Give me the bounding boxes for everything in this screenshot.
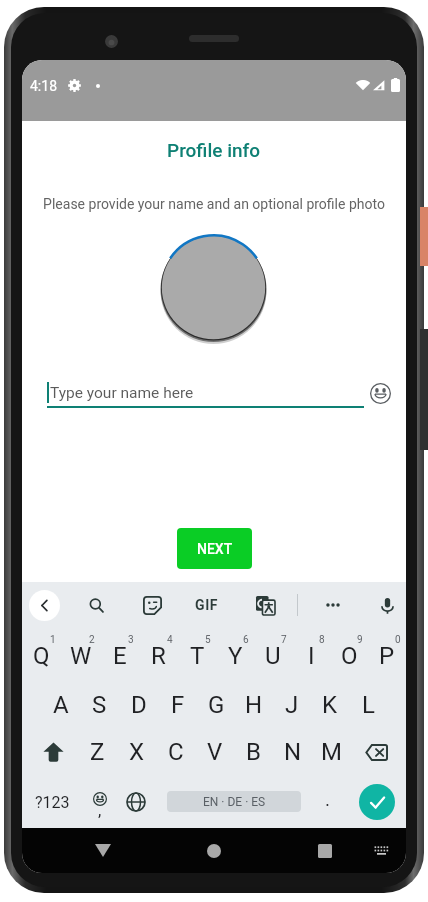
button[interactable]: F bbox=[158, 681, 197, 729]
staticText: , bbox=[98, 800, 102, 820]
staticText: 2 bbox=[89, 634, 95, 646]
button[interactable]: Emoji bbox=[367, 380, 393, 406]
button[interactable]: . bbox=[310, 780, 346, 824]
staticText: T bbox=[190, 642, 205, 670]
button[interactable]: S bbox=[80, 681, 119, 729]
button[interactable]: N bbox=[273, 729, 312, 775]
staticText: Y bbox=[228, 642, 243, 670]
staticText: A bbox=[53, 691, 69, 719]
button[interactable]: A bbox=[41, 681, 80, 729]
button[interactable]: Y bbox=[216, 627, 254, 681]
button[interactable]: K bbox=[311, 681, 349, 729]
button[interactable]: Shift bbox=[22, 729, 78, 775]
button[interactable]: Q bbox=[22, 627, 61, 681]
staticText: NEXT bbox=[197, 541, 233, 557]
button[interactable]: C bbox=[156, 729, 195, 775]
staticText: 5 bbox=[205, 634, 211, 646]
staticText: ?123 bbox=[35, 793, 70, 812]
button[interactable]: Enter bbox=[359, 784, 395, 820]
button[interactable]: V bbox=[195, 729, 234, 775]
button[interactable]: U bbox=[254, 627, 292, 681]
button[interactable]: Switch keyboard bbox=[357, 828, 405, 873]
staticText: X bbox=[129, 738, 145, 766]
staticText: Q bbox=[33, 642, 50, 670]
staticText: L bbox=[362, 691, 375, 719]
button[interactable]: E bbox=[100, 627, 139, 681]
staticText: I bbox=[308, 642, 315, 670]
button[interactable]: R bbox=[139, 627, 178, 681]
button[interactable]: Search bbox=[78, 586, 114, 624]
button[interactable]: Voice input bbox=[369, 586, 405, 624]
staticText: C bbox=[168, 738, 184, 766]
staticText: V bbox=[207, 738, 223, 766]
staticText: 1 bbox=[50, 634, 56, 646]
staticText: J bbox=[285, 691, 299, 719]
button[interactable]: O bbox=[330, 627, 368, 681]
staticText: W bbox=[70, 642, 92, 670]
button[interactable]: W bbox=[61, 627, 100, 681]
staticText: 9 bbox=[357, 634, 363, 646]
staticText: Type your name here bbox=[50, 384, 194, 402]
button[interactable]: Back bbox=[29, 590, 60, 621]
staticText: 7 bbox=[281, 634, 287, 646]
staticText: E bbox=[113, 642, 127, 670]
staticText: . bbox=[325, 788, 331, 810]
button[interactable]: L bbox=[349, 681, 387, 729]
staticText: EN · DE · ES bbox=[203, 795, 266, 809]
staticText: 6 bbox=[243, 634, 249, 646]
staticText: 8 bbox=[319, 634, 325, 646]
button[interactable]: Back bbox=[79, 828, 127, 873]
staticText: F bbox=[171, 691, 185, 719]
staticText: O bbox=[341, 642, 358, 670]
button[interactable]: Backspace bbox=[351, 729, 406, 775]
staticText: Profile info bbox=[167, 139, 261, 161]
staticText: 4 bbox=[167, 634, 173, 646]
button[interactable]: T bbox=[178, 627, 216, 681]
button[interactable]: Recent apps bbox=[301, 828, 349, 873]
staticText: 3 bbox=[128, 634, 134, 646]
button[interactable]: X bbox=[117, 729, 156, 775]
staticText: P bbox=[379, 642, 395, 670]
staticText: Z bbox=[90, 738, 105, 766]
staticText: K bbox=[322, 691, 338, 719]
button[interactable]: More options bbox=[315, 586, 351, 624]
staticText: D bbox=[131, 691, 147, 719]
button[interactable]: Translate bbox=[247, 586, 283, 624]
staticText: 0 bbox=[395, 634, 401, 646]
button[interactable]: Z bbox=[78, 729, 117, 775]
button[interactable]: Type your name here bbox=[47, 376, 364, 408]
staticText: G bbox=[208, 691, 225, 719]
button[interactable]: GIF bbox=[187, 587, 227, 623]
button[interactable]: G bbox=[197, 681, 235, 729]
staticText: R bbox=[151, 642, 166, 670]
staticText: 4:18 bbox=[30, 78, 57, 94]
staticText: Please provide your name and an optional… bbox=[43, 196, 385, 212]
button[interactable]: M bbox=[312, 729, 351, 775]
staticText: H bbox=[245, 691, 263, 719]
button[interactable]: NEXT bbox=[177, 528, 252, 569]
button[interactable]: B bbox=[234, 729, 273, 775]
button[interactable]: Change language bbox=[117, 780, 155, 824]
button[interactable]: I bbox=[292, 627, 330, 681]
staticText: GIF bbox=[195, 597, 219, 613]
staticText: M bbox=[321, 738, 342, 766]
button[interactable]: Home bbox=[190, 828, 238, 873]
button[interactable]: H bbox=[235, 681, 273, 729]
button[interactable]: D bbox=[119, 681, 158, 729]
button[interactable]: ?123 bbox=[27, 780, 77, 824]
button[interactable]: Add profile photo bbox=[160, 234, 267, 341]
staticText: S bbox=[92, 691, 107, 719]
button[interactable]: Stickers bbox=[134, 586, 170, 624]
staticText: N bbox=[284, 738, 302, 766]
staticText: U bbox=[265, 642, 281, 670]
button[interactable]: EN · DE · ES bbox=[167, 791, 301, 812]
button[interactable]: J bbox=[273, 681, 311, 729]
button[interactable]: Emoji bbox=[82, 780, 118, 824]
staticText: B bbox=[246, 738, 261, 766]
button[interactable]: P bbox=[368, 627, 406, 681]
